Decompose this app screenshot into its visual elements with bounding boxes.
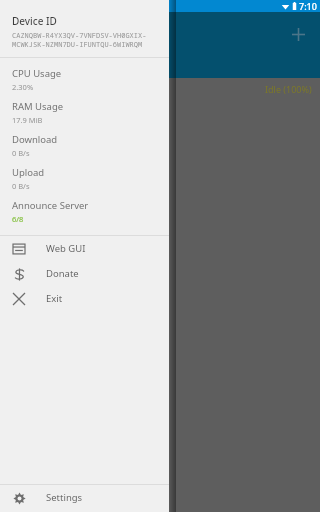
button[interactable]: Settings [0, 485, 169, 510]
staticText: Announce Server [12, 199, 89, 212]
staticText: 0 B/s [12, 148, 30, 158]
staticText: 2.30% [12, 82, 34, 92]
staticText: RAM Usage [12, 100, 64, 113]
staticText: Settings [46, 491, 83, 504]
staticText: Exit [46, 292, 63, 305]
button[interactable]: DEVICES [14, 55, 59, 69]
button[interactable]: Announce Server [0, 195, 169, 228]
button[interactable]: Upload [0, 162, 169, 195]
staticText: 0 B/s [12, 181, 30, 191]
staticText: 17.9 MiB [12, 115, 43, 125]
staticText: CPU Usage [12, 67, 62, 80]
staticText: Donate [46, 267, 79, 280]
button[interactable]: Add device [284, 20, 312, 48]
staticText: 7:10 [299, 0, 317, 12]
button[interactable]: CPU Usage [0, 63, 169, 96]
button[interactable]: Web GUI [0, 236, 169, 261]
staticText: Upload [12, 166, 45, 179]
staticText: CAZNQBW-R4YX3QV-7VNFDSV-VH0GXIX- MCWKJSK… [12, 31, 147, 49]
button[interactable]: Download [0, 129, 169, 162]
staticText: Web GUI [46, 242, 86, 255]
button[interactable]: Donate [0, 261, 169, 286]
staticText: Download [12, 133, 58, 146]
staticText: 6/8 [12, 214, 24, 224]
button[interactable]: Exit [0, 286, 169, 311]
staticText: Idle (100%) [265, 83, 312, 95]
staticText: Device ID [12, 14, 57, 28]
button[interactable]: RAM Usage [0, 96, 169, 129]
